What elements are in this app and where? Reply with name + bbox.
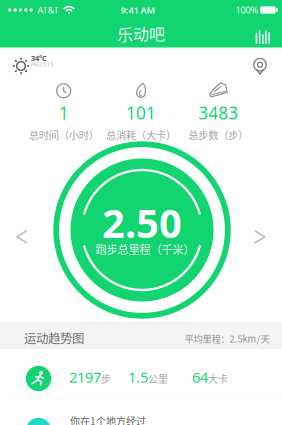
staticText: 总消耗（大卡） <box>106 127 176 142</box>
staticText: 64 <box>192 367 208 387</box>
staticText: PM2.5 13 <box>31 61 53 68</box>
staticText: 跑步总里程（千米） <box>95 241 194 257</box>
staticText: 34°C <box>31 53 47 63</box>
button[interactable] <box>252 57 268 76</box>
staticText: 总时间（小时） <box>29 127 99 142</box>
staticText: 你在1个地方经过 <box>70 414 146 425</box>
staticText: 步 <box>101 371 111 385</box>
staticText: 9:41 AM <box>120 4 155 16</box>
staticText: 2197 <box>69 367 101 387</box>
staticText: 101 <box>126 101 156 124</box>
button[interactable]: 2.50 <box>53 141 231 319</box>
staticText: AT&T <box>37 4 58 16</box>
staticText: 100% <box>235 4 258 16</box>
staticText: 1.5 <box>128 367 148 387</box>
button[interactable]: 你在1个地方经过 <box>0 397 282 425</box>
staticText: 3483 <box>198 101 238 124</box>
staticText: 1 <box>59 101 69 124</box>
staticText: 乐动吧 <box>117 22 165 45</box>
button[interactable] <box>16 230 28 244</box>
staticText: 运动趋势图 <box>24 329 84 347</box>
staticText: 大卡 <box>208 371 228 385</box>
staticText: 总步数（步） <box>188 127 248 142</box>
button[interactable] <box>251 25 275 49</box>
staticText: 2.50 <box>102 196 182 249</box>
staticText: 公里 <box>148 371 168 385</box>
staticText: 平均里程：2.5km/天 <box>184 332 269 345</box>
button[interactable]: 2197 <box>0 349 282 397</box>
button[interactable] <box>254 230 266 244</box>
